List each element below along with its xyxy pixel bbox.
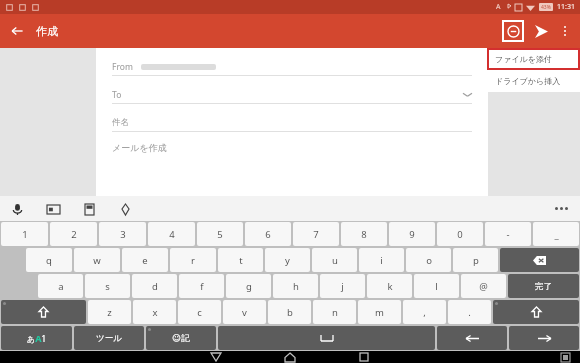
button[interactable]: 0 — [437, 222, 483, 246]
button[interactable]: z — [88, 300, 131, 324]
button[interactable]: More options — [554, 20, 576, 42]
button[interactable]: m — [358, 300, 401, 324]
button[interactable]: 9 — [389, 222, 435, 246]
button[interactable]: ドライブから挿入 — [487, 70, 580, 92]
staticText: y — [285, 254, 290, 267]
staticText: @ — [479, 280, 488, 293]
button[interactable]: k — [367, 274, 412, 298]
staticText: 作成 — [36, 24, 58, 38]
button[interactable]: 7 — [293, 222, 339, 246]
staticText: ツール — [96, 333, 122, 344]
button[interactable]: y — [265, 248, 310, 272]
button[interactable]: @ — [461, 274, 506, 298]
button[interactable]: 3 — [99, 222, 146, 246]
button[interactable]: Send — [528, 18, 554, 44]
staticText: i — [380, 254, 383, 267]
button[interactable]: _ — [533, 222, 579, 246]
button[interactable]: Home — [278, 351, 302, 363]
button[interactable]: 4 — [148, 222, 195, 246]
button[interactable]: 完了 — [508, 274, 579, 298]
button[interactable]: n — [313, 300, 356, 324]
button[interactable]: 8 — [341, 222, 387, 246]
button[interactable]: a — [38, 274, 83, 298]
staticText: 11:31 — [557, 2, 575, 12]
button[interactable]: ファイルを添付 — [487, 48, 580, 70]
button[interactable]: j — [320, 274, 365, 298]
staticText: ドライブから挿入 — [495, 76, 561, 86]
button[interactable]: Back — [204, 351, 228, 363]
button[interactable]: , — [403, 300, 446, 324]
button[interactable]: x — [133, 300, 176, 324]
staticText: c — [197, 306, 202, 319]
staticText: l — [435, 280, 438, 293]
button[interactable]: 5 — [197, 222, 243, 246]
button[interactable]: 2 — [50, 222, 97, 246]
button[interactable]: → — [509, 326, 579, 350]
button[interactable]: f — [179, 274, 224, 298]
staticText: n — [332, 306, 338, 319]
button[interactable]: u — [312, 248, 357, 272]
button[interactable]: Recents — [352, 351, 376, 363]
staticText: ☺記 — [172, 333, 190, 344]
button[interactable]: g — [226, 274, 271, 298]
staticText: h — [293, 280, 299, 293]
staticText: s — [105, 280, 110, 293]
button[interactable]: 6 — [245, 222, 291, 246]
button[interactable]: 1 — [1, 222, 48, 246]
button[interactable]: . — [448, 300, 491, 324]
button[interactable]: Settings — [82, 202, 96, 216]
button[interactable]: ツール — [74, 326, 144, 350]
button[interactable]: i — [359, 248, 404, 272]
button[interactable]: ⇧ — [1, 300, 86, 324]
button[interactable]: s — [85, 274, 130, 298]
button[interactable]: ␣ — [218, 326, 435, 350]
staticText: g — [246, 280, 252, 293]
button[interactable]: Clipboard — [46, 202, 60, 216]
staticText: w — [93, 254, 101, 267]
button[interactable]: More — [555, 207, 568, 210]
button[interactable]: o — [406, 248, 451, 272]
staticText: u — [332, 254, 338, 267]
button[interactable]: t — [218, 248, 263, 272]
staticText: _ — [554, 228, 559, 241]
staticText: 4 — [169, 228, 175, 241]
staticText: x — [152, 306, 158, 319]
button[interactable]: Screenshot — [558, 351, 572, 363]
button[interactable]: ← — [437, 326, 507, 350]
staticText: ファイルを添付 — [495, 54, 552, 64]
staticText: . — [468, 306, 471, 319]
button[interactable]: v — [223, 300, 266, 324]
staticText: d — [152, 280, 158, 293]
staticText: To — [112, 89, 122, 101]
staticText: a — [58, 280, 64, 293]
button[interactable]: p — [453, 248, 498, 272]
button[interactable]: c — [178, 300, 221, 324]
button[interactable]: - — [485, 222, 531, 246]
button[interactable]: b — [268, 300, 311, 324]
button[interactable]: h — [273, 274, 318, 298]
button[interactable]: d — [132, 274, 177, 298]
staticText: v — [242, 306, 247, 319]
staticText: 完了 — [535, 281, 552, 292]
staticText: - — [506, 228, 510, 241]
staticText: 1 — [22, 228, 28, 241]
button[interactable]: Voice input — [10, 202, 24, 216]
button[interactable]: ⌫ — [500, 248, 579, 272]
button[interactable]: あA1 — [1, 326, 72, 350]
button[interactable]: ☺記 — [146, 326, 216, 350]
staticText: k — [387, 280, 393, 293]
button[interactable]: q — [26, 248, 72, 272]
button[interactable]: r — [170, 248, 216, 272]
staticText: 件名 — [112, 117, 129, 128]
staticText: あA1 — [27, 332, 46, 344]
button[interactable]: e — [122, 248, 168, 272]
button[interactable]: l — [414, 274, 459, 298]
staticText: b — [287, 306, 293, 319]
staticText: 5 — [217, 228, 223, 241]
button[interactable]: w — [74, 248, 120, 272]
staticText: A — [496, 2, 501, 12]
button[interactable]: Theme — [118, 202, 132, 216]
button[interactable]: Attach — [502, 20, 524, 42]
button[interactable]: ⇧ — [493, 300, 579, 324]
button[interactable]: Back — [0, 14, 34, 48]
